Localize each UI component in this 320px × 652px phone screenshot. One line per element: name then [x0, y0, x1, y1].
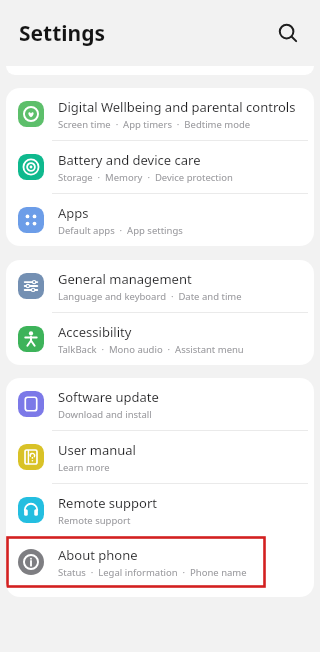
button[interactable]: About phone: [6, 536, 314, 588]
staticText: Storage · Memory · Device protection: [58, 171, 233, 184]
staticText: Status · Legal information · Phone name: [58, 566, 247, 579]
button[interactable]: General management: [6, 260, 314, 312]
staticText: TalkBack · Mono audio · Assistant menu: [58, 343, 244, 356]
staticText: Apps: [58, 204, 89, 222]
button[interactable]: Apps: [6, 194, 314, 246]
staticText: Accessibility: [58, 323, 132, 341]
button[interactable]: Remote support: [6, 484, 314, 536]
button[interactable]: Search: [270, 15, 306, 51]
button[interactable]: Software update: [6, 378, 314, 430]
staticText: Screen time · App timers · Bedtime mode: [58, 118, 251, 131]
button[interactable]: Battery and device care: [6, 141, 314, 193]
staticText: User manual: [58, 441, 136, 459]
staticText: Default apps · App settings: [58, 224, 183, 237]
staticText: General management: [58, 270, 192, 288]
button[interactable]: Digital Wellbeing and parental controls: [6, 88, 314, 140]
staticText: Remote support: [58, 514, 131, 527]
staticText: Language and keyboard · Date and time: [58, 290, 242, 303]
staticText: Software update: [58, 388, 159, 406]
staticText: Digital Wellbeing and parental controls: [58, 98, 296, 116]
button[interactable]: Accessibility: [6, 313, 314, 365]
staticText: About phone: [58, 546, 138, 564]
staticText: Learn more: [58, 461, 110, 474]
staticText: Battery and device care: [58, 151, 201, 169]
button[interactable]: User manual: [6, 431, 314, 483]
staticText: Settings: [19, 19, 106, 48]
staticText: Download and install: [58, 408, 152, 421]
staticText: Remote support: [58, 494, 158, 512]
